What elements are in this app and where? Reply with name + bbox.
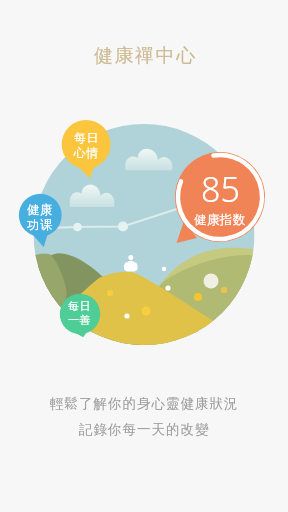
button[interactable]: 每日心情 [56, 124, 116, 168]
staticText: 記錄你每一天的改變 [79, 421, 210, 438]
staticText: 健康指数 [194, 212, 246, 228]
button[interactable]: 健康功课 [10, 195, 70, 239]
staticText: 每日 [68, 299, 92, 313]
staticText: 健康 [27, 202, 53, 217]
button[interactable]: 健康指数 85 [175, 157, 265, 237]
staticText: 一善 [68, 313, 92, 327]
staticText: 功课 [27, 217, 53, 232]
staticText: 85 [201, 166, 240, 212]
staticText: 每日 [74, 131, 99, 146]
staticText: 心情 [74, 146, 99, 161]
button[interactable]: 每日一善 [50, 291, 110, 335]
staticText: 健康禪中心 [93, 44, 196, 68]
staticText: 輕鬆了解你的身心靈健康狀況 [50, 395, 239, 412]
